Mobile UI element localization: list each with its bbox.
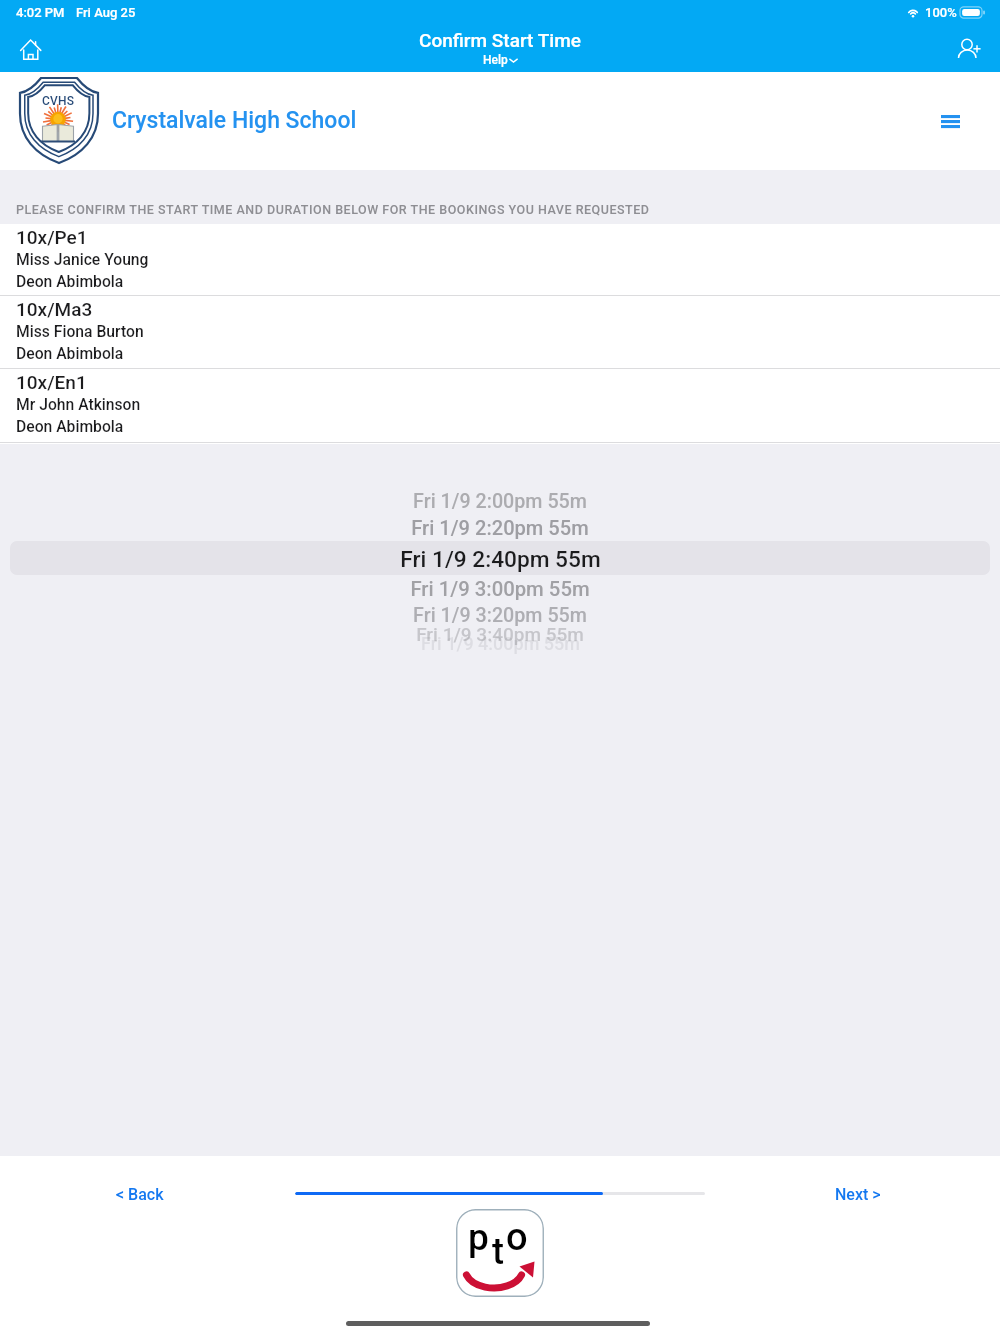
staticText: 10x/En1 [16,371,87,393]
staticText: < Back [116,1185,164,1204]
staticText: Deon Abimbola [16,272,124,290]
staticText: Fri 1/9 2:40pm 55m [400,546,601,573]
staticText: o [506,1215,528,1260]
button[interactable]: 10x/Pe1 [0,224,1000,296]
staticText: Help [483,53,508,67]
button[interactable]: Fri 1/9 3:20pm 55m [0,604,1000,627]
staticText: CVHS [42,94,75,108]
staticText: Mr John Atkinson [16,395,141,413]
staticText: t [492,1231,504,1273]
button[interactable]: Menu [929,100,971,142]
button[interactable]: 10x/Ma3 [0,296,1000,369]
staticText: 10x/Pe1 [16,226,88,248]
button[interactable]: PTO home [456,1209,544,1297]
button[interactable]: Help [483,53,518,67]
staticText: Miss Janice Young [16,250,149,268]
button[interactable]: Fri 1/9 4:00pm 55m [0,633,1000,654]
button[interactable]: 10x/En1 [0,369,1000,443]
button[interactable]: < Back [100,1181,180,1207]
staticText: Deon Abimbola [16,417,124,435]
button[interactable]: Fri 1/9 3:00pm 55m [0,577,1000,601]
staticText: Next > [835,1185,881,1204]
button[interactable]: Fri 1/9 2:20pm 55m [0,516,1000,540]
staticText: 10x/Ma3 [16,298,93,320]
button[interactable]: Fri 1/9 2:40pm 55m [0,546,1000,573]
staticText: Fri 1/9 4:00pm 55m [421,633,580,654]
staticText: Fri 1/9 3:40pm 55m [416,623,584,645]
staticText: Fri 1/9 3:20pm 55m [413,604,587,627]
staticText: Crystalvale High School [112,107,357,134]
staticText: PLEASE CONFIRM THE START TIME AND DURATI… [16,202,650,217]
staticText: Fri 1/9 2:00pm 55m [413,490,587,513]
staticText: Miss Fiona Burton [16,322,144,340]
staticText: 100% [925,5,957,20]
staticText: 4:02 PM [16,5,65,20]
staticText: p [468,1216,489,1259]
staticText: Confirm Start Time [419,29,581,51]
button[interactable]: Add person [950,29,990,69]
staticText: Fri Aug 25 [76,5,136,20]
button[interactable]: Next > [818,1181,898,1207]
staticText: Fri 1/9 3:00pm 55m [410,577,590,601]
staticText: Deon Abimbola [16,344,124,362]
staticText: Fri 1/9 2:20pm 55m [411,516,589,540]
button[interactable]: Fri 1/9 2:00pm 55m [0,490,1000,513]
button[interactable]: Fri 1/9 3:40pm 55m [0,623,1000,645]
button[interactable]: Home [11,29,51,69]
